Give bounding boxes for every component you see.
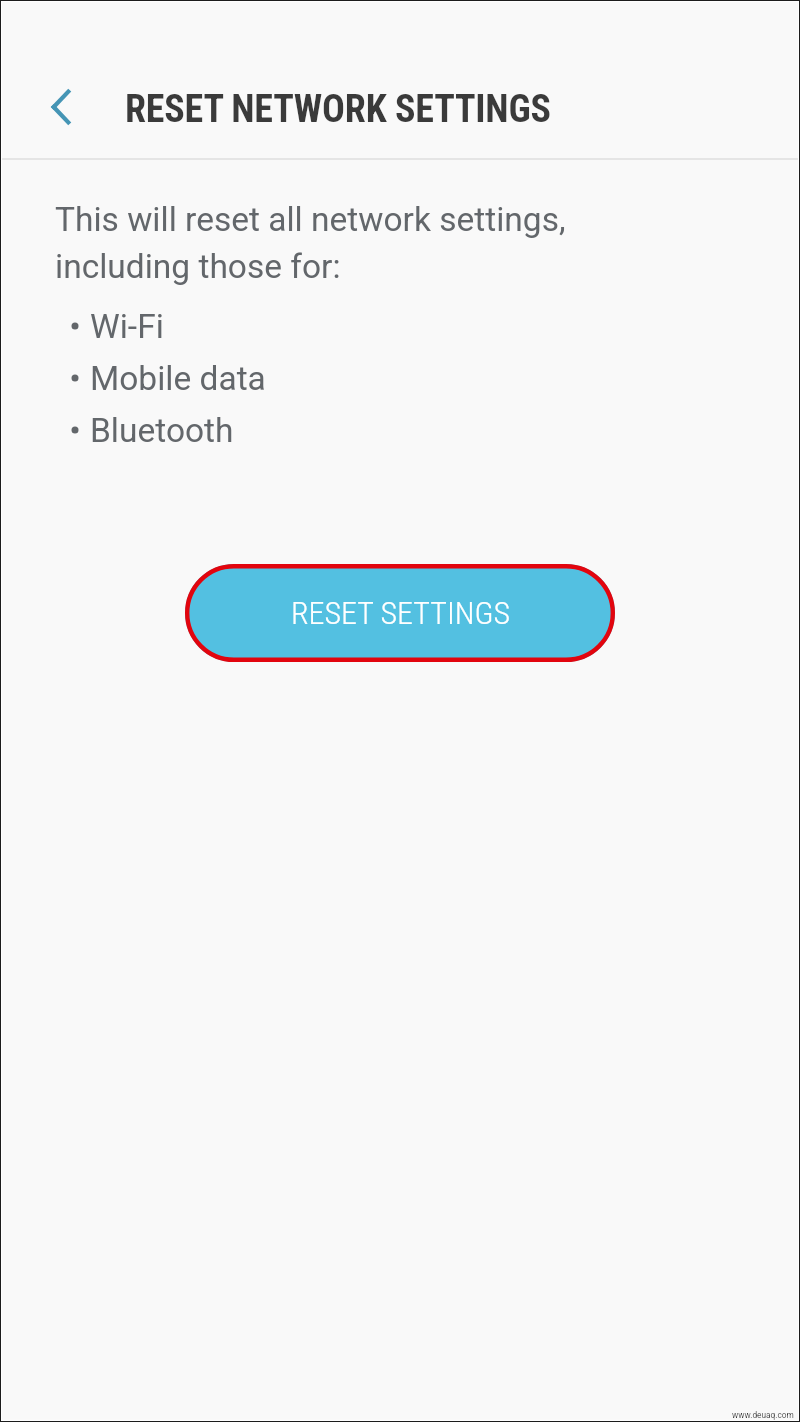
staticText: This will reset all network settings, in… [55,200,566,286]
staticText: Bluetooth [90,411,234,450]
button[interactable]: RESET SETTINGS [185,564,615,662]
button[interactable]: Navigate up [26,72,96,142]
staticText: RESET SETTINGS [291,594,510,632]
staticText: RESET NETWORK SETTINGS [125,87,551,132]
staticText: www.deuaq.com [732,1410,794,1420]
staticText: Wi-Fi [90,307,164,346]
staticText: Mobile data [90,359,266,398]
